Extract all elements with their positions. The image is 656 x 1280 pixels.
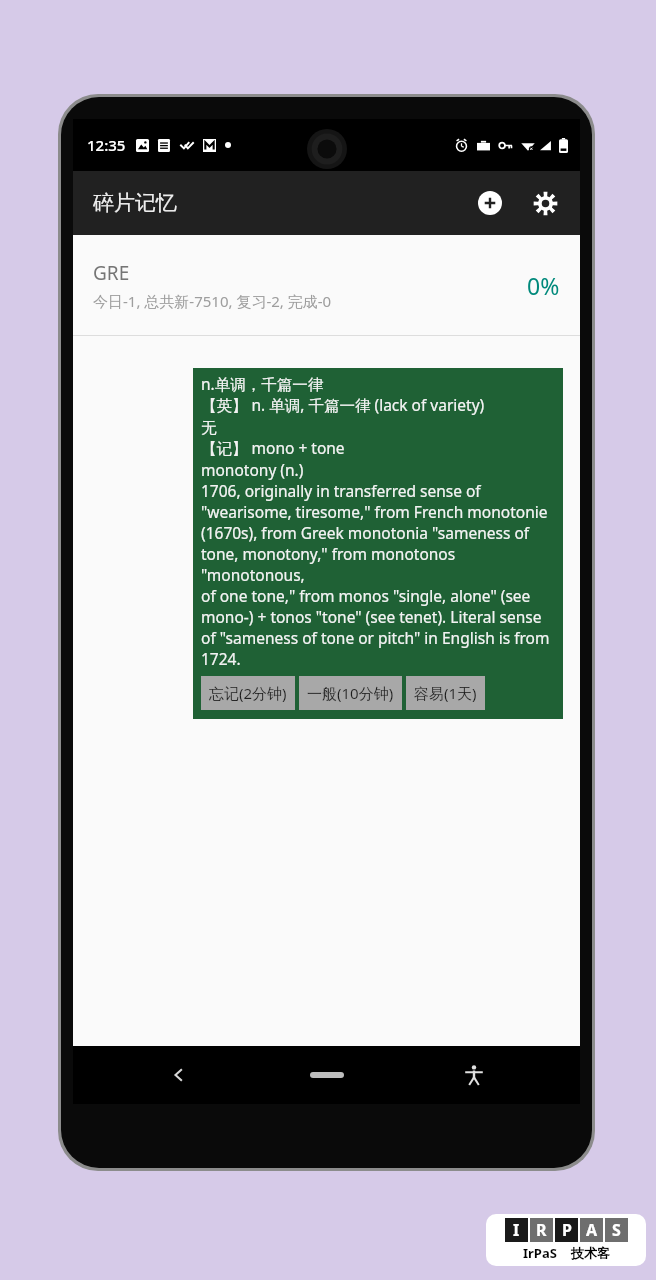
button[interactable]: Back xyxy=(155,1051,203,1099)
staticText: R xyxy=(536,1219,547,1241)
staticText: 容易(1天) xyxy=(414,683,477,703)
staticText: S xyxy=(612,1219,621,1241)
staticText: 碎片记忆 xyxy=(93,190,177,216)
staticText: I xyxy=(513,1219,520,1241)
staticText: 忘记(2分钟) xyxy=(209,683,287,703)
staticText: P xyxy=(562,1219,572,1241)
staticText: 技术客 xyxy=(571,1245,610,1261)
button[interactable]: GRE xyxy=(73,235,580,336)
button[interactable]: 忘记(2分钟) xyxy=(201,676,295,710)
staticText: A xyxy=(586,1219,598,1241)
staticText: 0% xyxy=(527,270,560,301)
button[interactable]: 一般(10分钟) xyxy=(299,676,402,710)
button[interactable]: Add xyxy=(467,180,513,226)
staticText: n.单调，千篇一律 【英】 n. 单调, 千篇一律 (lack of varie… xyxy=(201,373,557,670)
button[interactable]: Settings xyxy=(522,180,568,226)
staticText: IrPaS xyxy=(523,1244,557,1262)
staticText: GRE xyxy=(93,260,130,286)
button[interactable]: Home xyxy=(292,1060,362,1090)
button[interactable]: 容易(1天) xyxy=(406,676,485,710)
staticText: 12:35 xyxy=(87,135,126,155)
button[interactable]: Accessibility xyxy=(450,1051,498,1099)
staticText: 今日-1, 总共新-7510, 复习-2, 完成-0 xyxy=(93,291,332,311)
staticText: 一般(10分钟) xyxy=(307,683,394,703)
